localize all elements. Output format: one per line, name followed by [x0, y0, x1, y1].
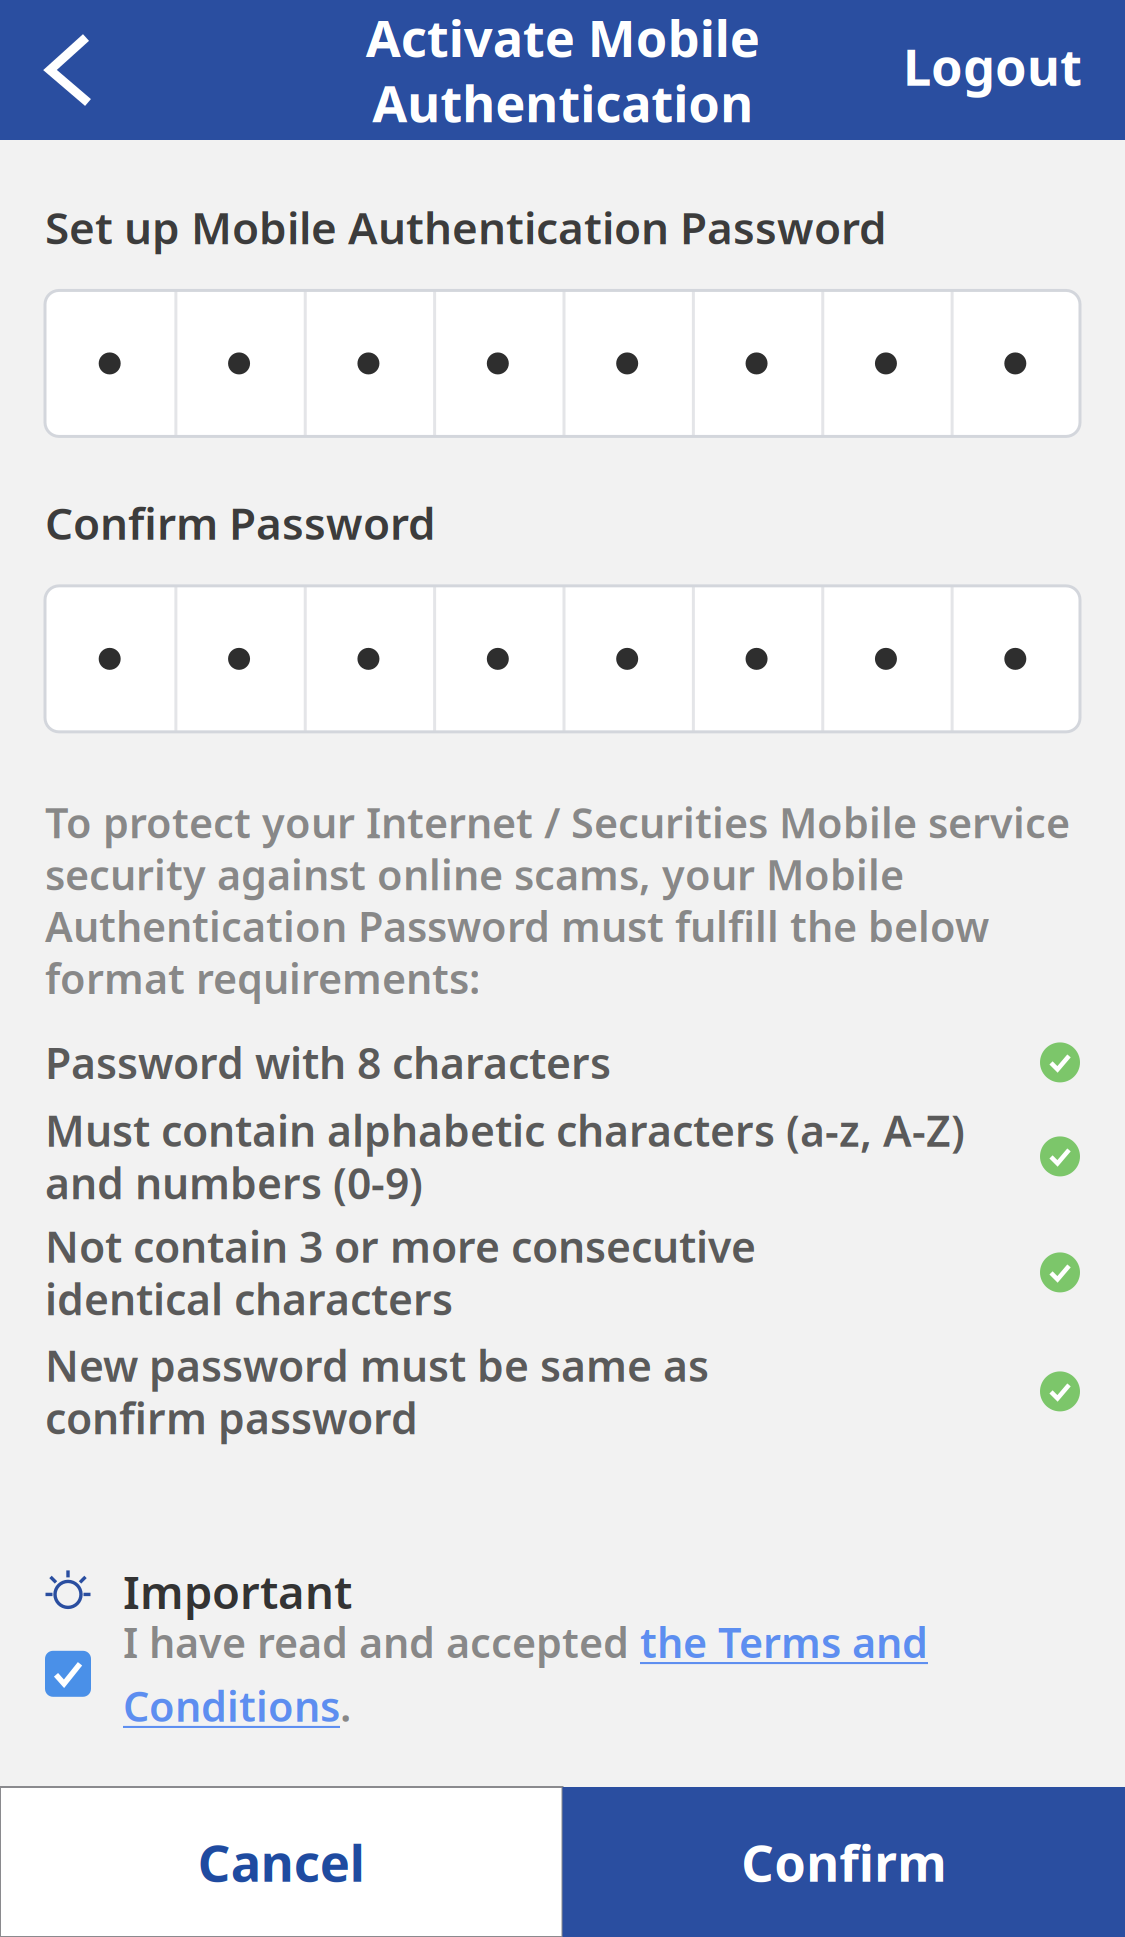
staticText: Activate Mobile Authentication — [365, 4, 759, 136]
staticText: Confirm Password — [45, 493, 436, 552]
staticText: New password must be same as confirm pas… — [45, 1337, 709, 1446]
staticText: Confirm — [741, 1828, 946, 1896]
staticText: Must contain alphabetic characters (a-z,… — [45, 1102, 965, 1211]
button[interactable]: I have read and accepted the Terms and C… — [45, 1614, 1003, 1733]
button[interactable]: Confirm — [562, 1787, 1125, 1937]
staticText: Important — [123, 1561, 352, 1621]
button[interactable]: Logout — [903, 0, 1125, 140]
button[interactable]: Cancel — [0, 1787, 562, 1937]
staticText: Not contain 3 or more consecutive identi… — [45, 1218, 756, 1327]
staticText: Cancel — [198, 1828, 365, 1896]
button[interactable]: Back — [0, 0, 134, 140]
staticText: I have read and accepted the Terms and C… — [123, 1614, 928, 1733]
button[interactable]: Confirm Password — [45, 586, 1080, 732]
button[interactable]: Mobile Authentication Password — [45, 290, 1080, 436]
staticText: Logout — [903, 32, 1082, 100]
staticText: To protect your Internet / Securities Mo… — [45, 795, 1070, 1005]
staticText: Password with 8 characters — [45, 1034, 611, 1091]
staticText: Set up Mobile Authentication Password — [45, 198, 887, 256]
